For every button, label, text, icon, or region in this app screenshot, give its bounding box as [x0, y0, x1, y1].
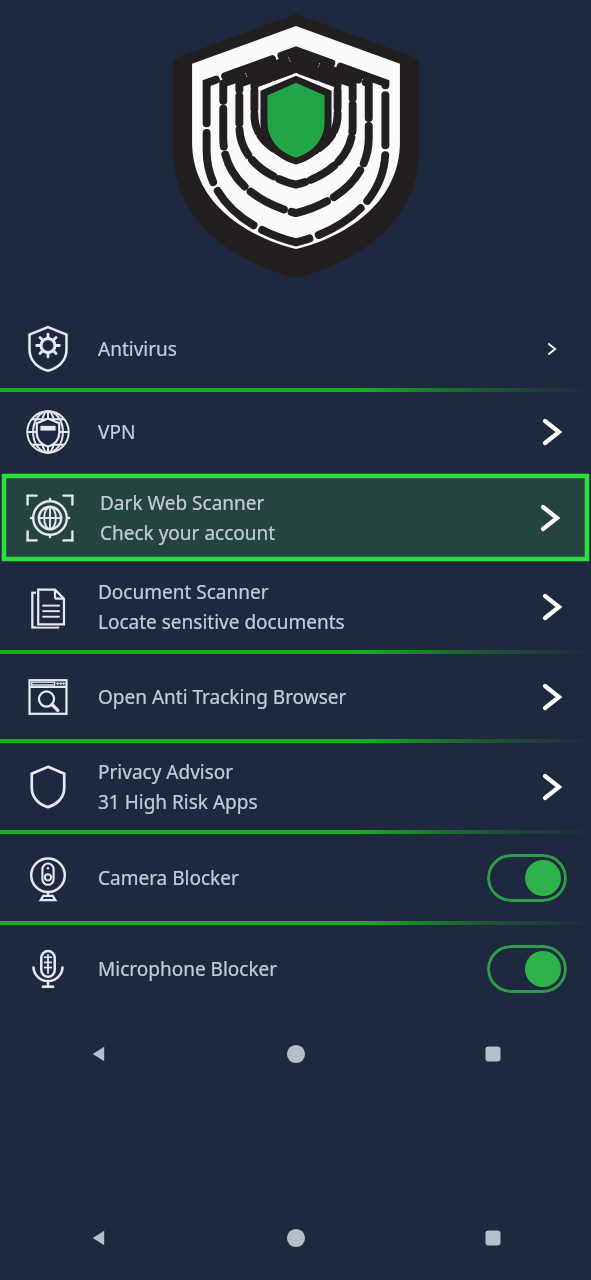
staticText: 31 High Risk Apps	[98, 789, 258, 815]
button[interactable]: Home	[197, 1214, 394, 1262]
button[interactable]: Toggle Camera Blocker	[487, 854, 567, 902]
staticText: Dark Web Scanner	[100, 490, 265, 516]
staticText: Document Scanner	[98, 579, 269, 605]
button[interactable]: Privacy Advisor	[0, 743, 591, 830]
button[interactable]: VPN	[0, 392, 591, 472]
button[interactable]: Home	[197, 1030, 394, 1078]
staticText: Microphone Blocker	[98, 956, 487, 982]
staticText: Privacy Advisor	[98, 759, 234, 785]
staticText: Check your account	[100, 520, 276, 546]
button[interactable]: Recent apps	[394, 1030, 591, 1078]
staticText: Antivirus	[98, 336, 177, 362]
staticText: VPN	[98, 419, 136, 445]
staticText: Open Anti Tracking Browser	[98, 684, 347, 710]
button[interactable]: Dark Web Scanner	[2, 474, 589, 561]
button[interactable]: Back	[0, 1030, 197, 1078]
button[interactable]: Recent apps	[394, 1214, 591, 1262]
staticText: Camera Blocker	[98, 865, 487, 891]
button[interactable]: Open Anti Tracking Browser	[0, 654, 591, 739]
button[interactable]: Camera Blocker	[0, 834, 591, 921]
button[interactable]: Document Scanner	[0, 563, 591, 650]
button[interactable]: Toggle Microphone Blocker	[487, 945, 567, 993]
button[interactable]: Back	[0, 1214, 197, 1262]
button[interactable]: Microphone Blocker	[0, 925, 591, 1012]
button[interactable]: Antivirus	[0, 310, 591, 388]
staticText: Locate sensitive documents	[98, 609, 345, 635]
